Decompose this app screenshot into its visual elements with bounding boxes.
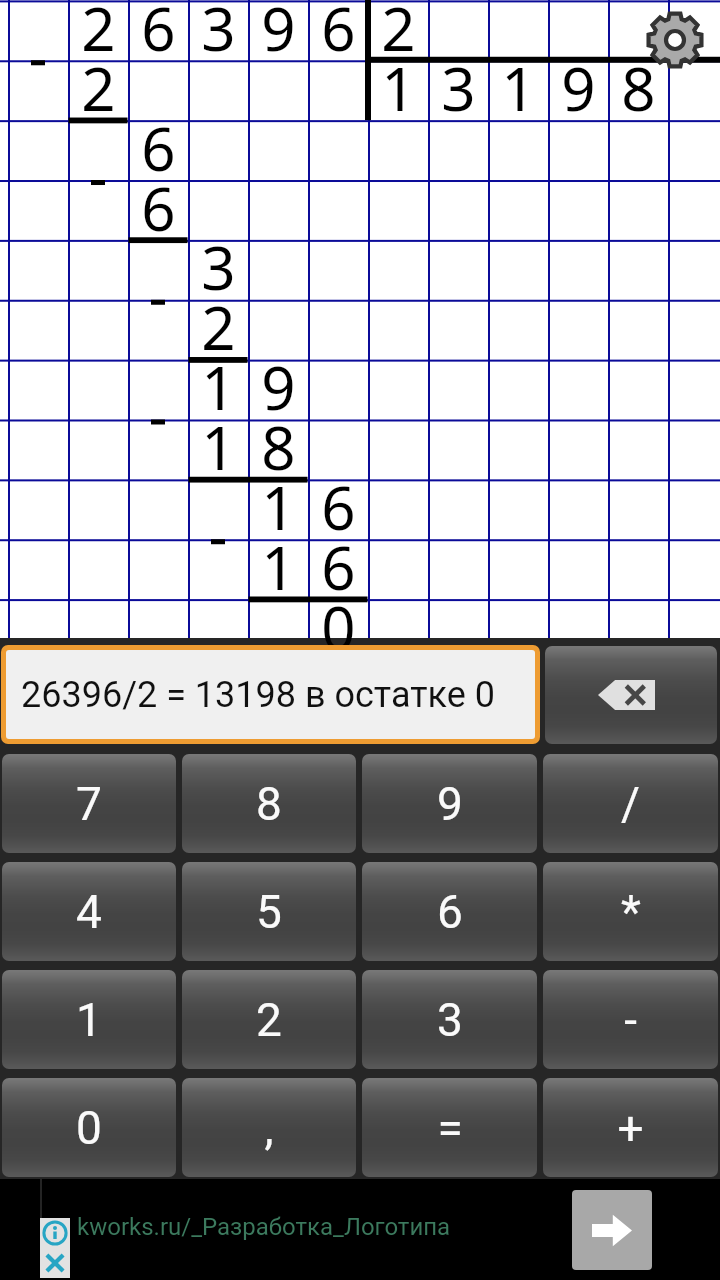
staticText: 9 [261, 0, 296, 69]
staticText: , [264, 1101, 274, 1155]
staticText: 7 [76, 777, 102, 831]
staticText: 9 [261, 346, 296, 428]
staticText: kworks.ru/_Разработка_Логотипа [77, 1213, 451, 1241]
button[interactable]: Backspace [545, 646, 717, 744]
button[interactable]: Open advertisement [572, 1190, 652, 1270]
staticText: 6 [437, 885, 463, 939]
button[interactable]: 6 [362, 862, 537, 961]
staticText: 0 [321, 586, 356, 668]
button[interactable]: Settings [646, 11, 704, 69]
staticText: 3 [441, 47, 476, 129]
button[interactable]: * [543, 862, 718, 961]
button[interactable]: 2 [182, 970, 356, 1069]
button[interactable]: 5 [182, 862, 356, 961]
staticText: 6 [321, 526, 356, 608]
staticText: 1 [201, 346, 236, 428]
staticText: 2 [256, 993, 282, 1047]
button[interactable]: Close ad [40, 1248, 70, 1278]
staticText: 1 [76, 993, 102, 1047]
staticText: + [617, 1101, 644, 1155]
staticText: 8 [261, 406, 296, 488]
button[interactable]: 7 [2, 754, 176, 853]
button[interactable]: , [182, 1078, 356, 1177]
staticText: 1 [501, 47, 536, 129]
button[interactable]: + [543, 1078, 718, 1177]
button[interactable]: 4 [2, 862, 176, 961]
staticText: 3 [201, 226, 236, 308]
button[interactable]: 0 [2, 1078, 176, 1177]
button[interactable]: 3 [362, 970, 537, 1069]
button[interactable]: 1 [2, 970, 176, 1069]
staticText: 6 [321, 466, 356, 548]
staticText: 26396/2 = 13198 в остатке 0 [21, 674, 495, 716]
staticText: 6 [141, 167, 176, 249]
staticText: 6 [321, 0, 356, 69]
staticText: 9 [561, 47, 596, 129]
staticText: 8 [256, 777, 282, 831]
staticText: 9 [437, 777, 463, 831]
staticText: 5 [256, 885, 282, 939]
staticText: 1 [261, 466, 296, 548]
staticText: 1 [201, 406, 236, 488]
staticText: 3 [201, 0, 236, 69]
staticText: * [621, 885, 641, 939]
staticText: / [621, 777, 640, 831]
staticText: 6 [141, 0, 176, 69]
button[interactable]: / [543, 754, 718, 853]
staticText: = [437, 1101, 463, 1155]
staticText: 6 [141, 107, 176, 189]
button[interactable]: Ad information [40, 1218, 70, 1248]
staticText: 1 [261, 526, 296, 608]
staticText: 2 [81, 0, 116, 69]
button[interactable]: - [543, 970, 718, 1069]
staticText: 2 [201, 286, 236, 368]
staticText: 8 [621, 47, 656, 129]
staticText: - [624, 993, 637, 1047]
staticText: 2 [81, 47, 116, 129]
staticText: 2 [381, 0, 416, 69]
button[interactable]: 9 [362, 754, 537, 853]
staticText: 3 [437, 993, 463, 1047]
staticText: 4 [76, 885, 102, 939]
button[interactable]: 26396/2 = 13198 в остатке 0 [6, 650, 535, 739]
button[interactable]: 8 [182, 754, 356, 853]
staticText: 0 [76, 1101, 102, 1155]
button[interactable]: = [362, 1078, 537, 1177]
staticText: 1 [381, 47, 416, 129]
